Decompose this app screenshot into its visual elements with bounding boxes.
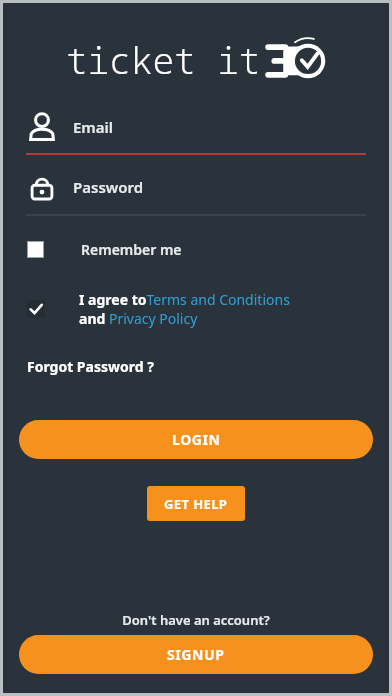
button[interactable]: Email bbox=[27, 112, 365, 142]
button[interactable]: LOGIN bbox=[19, 420, 373, 459]
staticText: SIGNUP bbox=[167, 645, 225, 664]
button[interactable]: Signup bbox=[19, 635, 373, 674]
staticText: Password bbox=[73, 177, 144, 197]
staticText: I agree toTerms and Conditions and Priva… bbox=[79, 290, 290, 328]
staticText: Remember me bbox=[81, 240, 182, 259]
button[interactable]: GET HELP bbox=[147, 486, 245, 521]
staticText: Don't have an account? bbox=[3, 611, 389, 629]
button[interactable]: Password bbox=[27, 172, 365, 202]
button[interactable]: I agree toTerms and Conditions and Priva… bbox=[27, 290, 365, 328]
button[interactable]: Remember me bbox=[27, 240, 365, 259]
staticText: LOGIN bbox=[172, 430, 221, 449]
staticText: Email bbox=[73, 117, 114, 137]
button[interactable]: Forgot Password ? bbox=[27, 357, 154, 376]
staticText: GET HELP bbox=[164, 495, 228, 513]
staticText: ticket it bbox=[66, 36, 261, 85]
staticText: Forgot Password ? bbox=[27, 357, 154, 376]
